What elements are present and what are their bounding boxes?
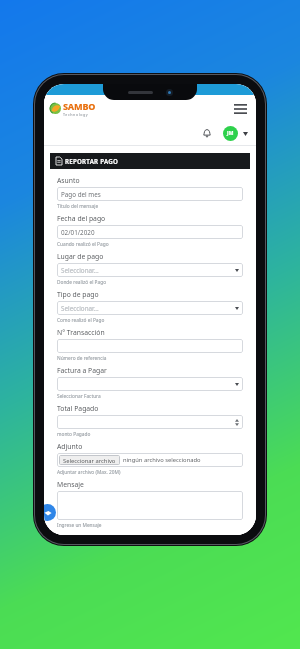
staticText: Título del mensaje bbox=[57, 203, 99, 210]
button[interactable]: Seleccionar archivo bbox=[57, 453, 243, 467]
button[interactable]: Seleccionar... bbox=[57, 301, 243, 315]
staticText: monto Pagado bbox=[57, 431, 91, 438]
staticText: Donde realizó el Pago bbox=[57, 279, 107, 286]
staticText: Como realizó el Pago bbox=[57, 317, 105, 324]
button[interactable]: Open navigation menu bbox=[230, 98, 251, 119]
staticText: Total Pagado bbox=[57, 404, 99, 413]
button[interactable]: JM bbox=[223, 126, 238, 141]
staticText: SAMBO bbox=[63, 100, 96, 112]
staticText: Seleccionar Factura bbox=[57, 393, 101, 400]
staticText: Adjunto bbox=[57, 442, 83, 451]
staticText: Ingrese un Mensaje bbox=[57, 522, 102, 529]
staticText: Seleccionar... bbox=[61, 266, 99, 275]
staticText: Factura a Pagar bbox=[57, 366, 107, 375]
staticText: REPORTAR PAGO bbox=[65, 157, 119, 165]
button[interactable]: Account options bbox=[241, 129, 250, 138]
staticText: Fecha del pago bbox=[57, 214, 106, 223]
button[interactable]: Seleccionar... bbox=[57, 263, 243, 277]
staticText: Cuando realizó el Pago bbox=[57, 241, 109, 248]
staticText: Seleccionar... bbox=[61, 304, 99, 313]
staticText: Technology bbox=[63, 112, 89, 117]
button[interactable]: Pago del mes bbox=[57, 187, 243, 201]
button[interactable]: 02/01/2020 bbox=[57, 225, 243, 239]
staticText: Asunto bbox=[57, 176, 80, 185]
staticText: Tipo de pago bbox=[57, 290, 99, 299]
button[interactable] bbox=[57, 377, 243, 391]
staticText: Lugar de pago bbox=[57, 252, 104, 261]
button[interactable] bbox=[57, 491, 243, 520]
staticText: ningún archivo seleccionado bbox=[123, 456, 201, 464]
staticText: Seleccionar archivo bbox=[63, 457, 116, 463]
staticText: JM bbox=[227, 130, 234, 137]
staticText: Número de referencia bbox=[57, 355, 107, 362]
staticText: Pago del mes bbox=[61, 190, 101, 199]
staticText: N° Transacción bbox=[57, 328, 105, 337]
staticText: Mensaje bbox=[57, 480, 84, 489]
button[interactable] bbox=[57, 339, 243, 353]
button[interactable] bbox=[57, 415, 243, 429]
button[interactable]: Chat support bbox=[44, 504, 56, 521]
staticText: 02/01/2020 bbox=[61, 228, 95, 237]
staticText: Adjuntar archivo (Max. 20M) bbox=[57, 469, 121, 476]
button[interactable]: Notifications bbox=[198, 125, 215, 142]
